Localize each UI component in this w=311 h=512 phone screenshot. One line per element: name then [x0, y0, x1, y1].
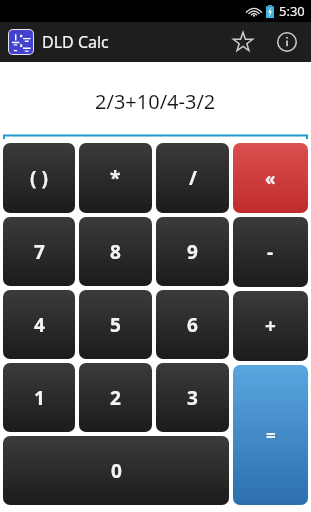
staticText: 8 [110, 239, 121, 265]
staticText: 1 [34, 385, 45, 411]
button[interactable]: 9 [156, 217, 229, 286]
button[interactable]: 4 [3, 290, 75, 359]
staticText: 7 [34, 239, 45, 265]
button[interactable]: DLD Calc icon [9, 30, 33, 54]
staticText: 9 [187, 239, 198, 265]
button[interactable]: Backspace [233, 143, 308, 213]
staticText: 2/3+10/4-3/2 [95, 88, 216, 115]
staticText: 4 [34, 312, 45, 338]
button[interactable]: 2 [79, 363, 152, 432]
staticText: 5:30 [279, 2, 305, 20]
staticText: 6 [187, 312, 198, 338]
button[interactable]: 1 [3, 363, 75, 432]
staticText: + [265, 313, 276, 339]
staticText: = [266, 424, 276, 447]
button[interactable]: / [156, 143, 229, 213]
button[interactable]: + [233, 291, 308, 361]
staticText: DLD Calc [42, 31, 109, 53]
button[interactable]: 3 [156, 363, 229, 432]
staticText: - [267, 239, 274, 265]
button[interactable]: * [79, 143, 152, 213]
button[interactable]: 0 [3, 436, 229, 505]
button[interactable]: Info [265, 22, 309, 62]
staticText: * [110, 165, 121, 191]
staticText: 2 [110, 385, 121, 411]
button[interactable]: 8 [79, 217, 152, 286]
button[interactable]: 7 [3, 217, 75, 286]
staticText: « [265, 167, 276, 190]
button[interactable]: - [233, 217, 308, 287]
button[interactable]: 5 [79, 290, 152, 359]
button[interactable]: 6 [156, 290, 229, 359]
button[interactable]: = [233, 365, 308, 505]
staticText: 0 [111, 458, 122, 484]
button[interactable]: Favorite [221, 22, 265, 62]
staticText: / [189, 165, 197, 191]
staticText: ( ) [30, 165, 48, 191]
staticText: 3 [187, 385, 198, 411]
button[interactable]: ( ) [3, 143, 75, 213]
staticText: 5 [110, 312, 121, 338]
